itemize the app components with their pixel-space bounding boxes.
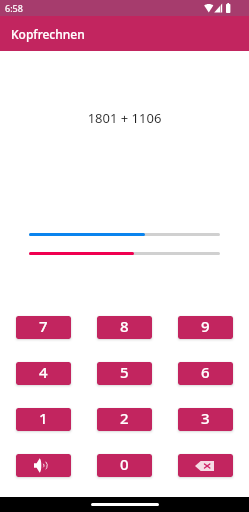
button[interactable]: 3 <box>178 408 233 431</box>
staticText: 6:58 <box>5 2 23 14</box>
button[interactable]: 4 <box>16 362 71 385</box>
staticText: 9 <box>201 316 210 336</box>
button[interactable]: 7 <box>16 316 71 339</box>
button[interactable]: 6 <box>178 362 233 385</box>
button[interactable]: 1 <box>16 408 71 431</box>
staticText: 5 <box>120 362 129 382</box>
staticText: 7 <box>39 316 48 336</box>
staticText: 1 <box>39 408 48 428</box>
staticText: 8 <box>120 316 129 336</box>
staticText: 2 <box>120 408 129 428</box>
staticText: 0 <box>120 454 129 474</box>
staticText: 1801 + 1106 <box>0 109 249 127</box>
button[interactable]: Read problem aloud <box>16 454 71 477</box>
staticText: Kopfrechnen <box>11 26 85 42</box>
button[interactable]: 8 <box>97 316 152 339</box>
staticText: 3 <box>201 408 210 428</box>
button[interactable]: 0 <box>97 454 152 477</box>
button[interactable]: 5 <box>97 362 152 385</box>
button[interactable]: Delete <box>178 454 233 477</box>
button[interactable]: 2 <box>97 408 152 431</box>
staticText: 6 <box>201 362 210 382</box>
button[interactable]: 9 <box>178 316 233 339</box>
staticText: 4 <box>39 362 48 382</box>
